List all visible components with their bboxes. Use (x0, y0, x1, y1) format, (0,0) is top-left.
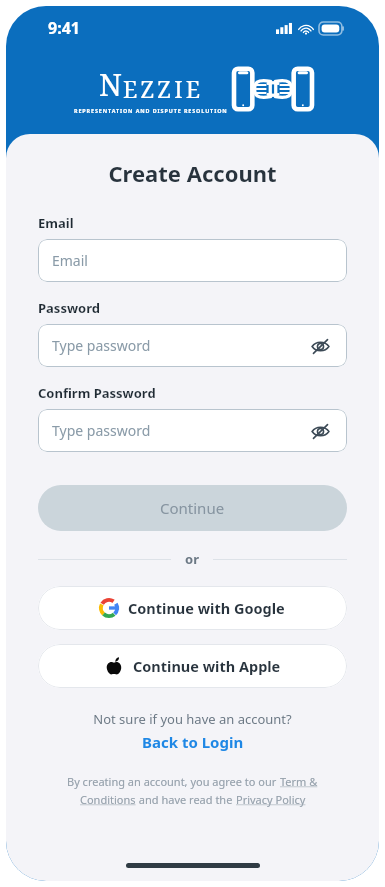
button[interactable]: Type password (38, 409, 347, 452)
button[interactable]: Back to Login (38, 732, 347, 752)
staticText: Continue with Apple (133, 656, 281, 676)
staticText: Privacy Policy (236, 792, 306, 807)
staticText: Term & (280, 774, 318, 789)
staticText: and have read the (136, 792, 236, 807)
staticText: Continue with Google (128, 598, 285, 618)
button[interactable]: Term & (280, 774, 318, 789)
button[interactable]: Conditions (80, 792, 136, 807)
button[interactable]: Continue with Google (38, 586, 347, 630)
staticText: Back to Login (142, 732, 244, 752)
staticText: N (99, 64, 123, 105)
staticText: Password (38, 299, 100, 317)
staticText: Create Account (38, 158, 347, 188)
staticText: EZZIE (123, 73, 204, 104)
staticText: Not sure if you have an account? (38, 710, 347, 728)
button[interactable]: Type password (38, 324, 347, 367)
button[interactable]: Show password (307, 418, 333, 444)
staticText: REPRESENTATION AND DISPUTE RESOLUTION (74, 107, 228, 114)
button[interactable]: Email (38, 239, 347, 282)
staticText: Email (38, 214, 74, 232)
button[interactable]: Show password (307, 333, 333, 359)
staticText: Email (52, 251, 333, 270)
staticText: By creating an account, you agree to our (67, 774, 280, 789)
staticText: Type password (52, 336, 307, 355)
staticText: or (185, 550, 199, 568)
staticText: Continue (160, 498, 225, 518)
button[interactable]: Continue with Apple (38, 644, 347, 688)
staticText: Conditions (80, 792, 136, 807)
staticText: Confirm Password (38, 384, 156, 402)
button[interactable]: Privacy Policy (236, 792, 306, 807)
staticText: Type password (52, 421, 307, 440)
staticText: 9:41 (48, 17, 80, 39)
button[interactable]: Continue (38, 485, 347, 531)
